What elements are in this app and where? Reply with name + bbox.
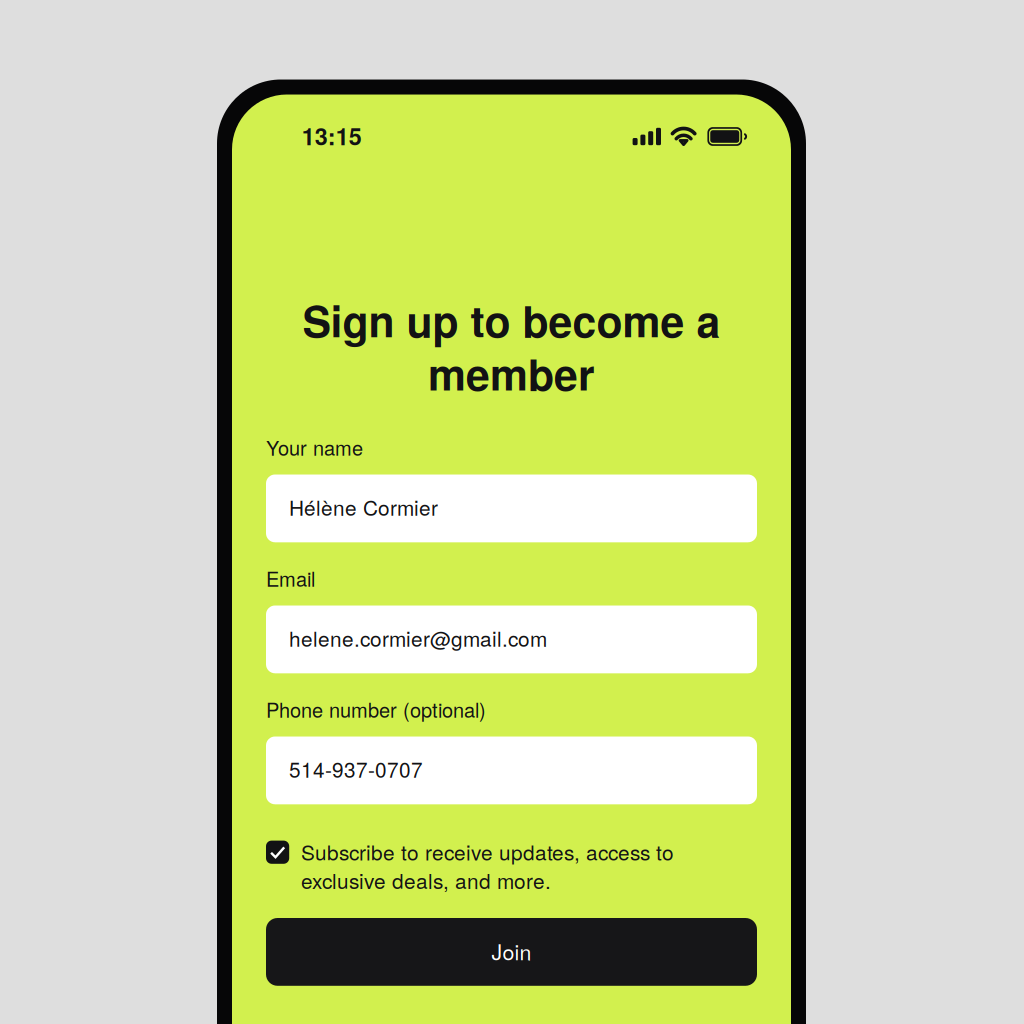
staticText: Email [266,564,315,592]
button[interactable]: helene.cormier@gmail.com [266,605,757,673]
staticText: 514-937-0707 [289,754,423,784]
staticText: Sign up to become a [302,289,720,350]
staticText: 13:15 [302,119,362,152]
button[interactable]: Join [266,918,757,986]
staticText: Subscribe to receive updates, access to [301,837,674,866]
staticText: helene.cormier@gmail.com [289,623,547,653]
staticText: Join [491,936,531,966]
button[interactable]: 514-937-0707 [266,736,757,804]
staticText: Your name [266,433,363,461]
button[interactable]: Hélène Cormier [266,474,757,542]
staticText: member [428,343,595,404]
staticText: exclusive deals, and more. [301,865,551,895]
staticText: Hélène Cormier [289,492,438,522]
staticText: Phone number (optional) [266,695,486,723]
button[interactable]: Subscribe to receive updates, access to [266,841,757,893]
